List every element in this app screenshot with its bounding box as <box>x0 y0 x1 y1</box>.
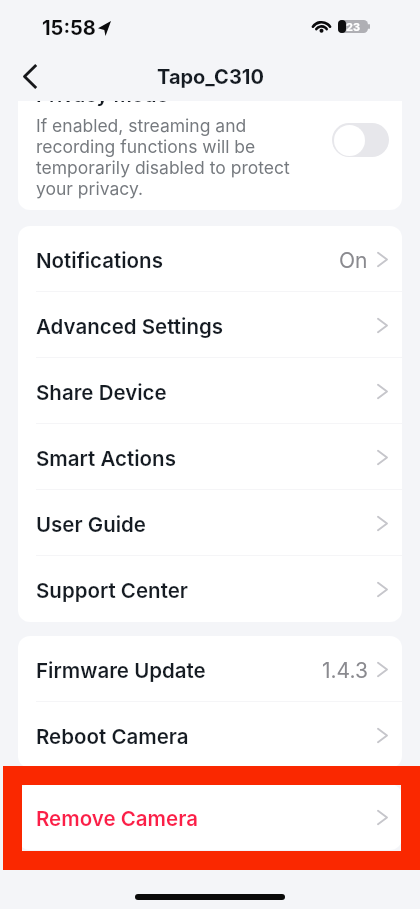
staticText: On <box>339 248 368 273</box>
button[interactable]: Support Center <box>18 556 402 622</box>
button[interactable]: Privacy Mode toggle <box>332 123 389 157</box>
staticText: Tapo_C310 <box>157 65 264 89</box>
button[interactable]: Remove Camera <box>18 784 402 850</box>
staticText: Remove Camera <box>36 806 198 831</box>
staticText: If enabled, streaming and recording func… <box>36 115 290 199</box>
staticText: Support Center <box>36 578 188 603</box>
button[interactable]: Firmware Update <box>18 636 402 702</box>
button[interactable]: Back <box>8 55 52 99</box>
staticText: 23 <box>346 20 361 33</box>
staticText: Share Device <box>36 380 167 405</box>
staticText: 15:58 <box>42 16 96 40</box>
staticText: 1.4.3 <box>322 658 368 683</box>
button[interactable]: Smart Actions <box>18 424 402 490</box>
staticText: Privacy Mode <box>36 101 169 107</box>
staticText: Advanced Settings <box>36 314 224 339</box>
button[interactable]: Reboot Camera <box>18 702 402 768</box>
button[interactable]: Privacy Mode <box>18 101 402 210</box>
button[interactable]: Notifications <box>18 226 402 292</box>
staticText: Firmware Update <box>36 658 206 683</box>
staticText: Smart Actions <box>36 446 176 471</box>
button[interactable]: Share Device <box>18 358 402 424</box>
staticText: Reboot Camera <box>36 724 189 749</box>
staticText: User Guide <box>36 512 146 537</box>
button[interactable]: Advanced Settings <box>18 292 402 358</box>
staticText: Notifications <box>36 248 163 273</box>
button[interactable]: User Guide <box>18 490 402 556</box>
